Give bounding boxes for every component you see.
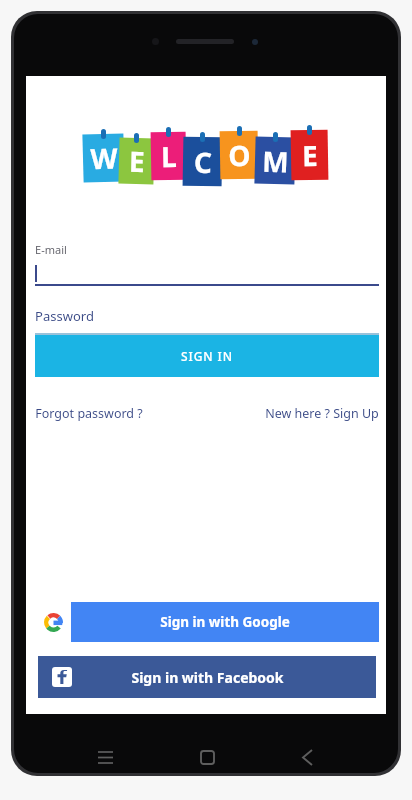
button[interactable]: Forgot password ?: [33, 403, 145, 424]
staticText: E: [128, 142, 145, 180]
button[interactable]: New here ? Sign Up: [263, 403, 381, 424]
staticText: O: [228, 136, 251, 174]
staticText: Sign in with Google: [160, 613, 290, 631]
button[interactable]: Menu: [92, 744, 118, 770]
button[interactable]: Home: [194, 744, 220, 770]
staticText: M: [261, 142, 289, 180]
staticText: Sign in with Facebook: [131, 668, 284, 687]
button[interactable]: SIGN IN: [35, 335, 379, 377]
staticText: Password: [35, 307, 94, 325]
button[interactable]: E-mail: [35, 242, 379, 286]
staticText: C: [194, 143, 212, 181]
button[interactable]: Sign in with Facebook: [38, 656, 376, 698]
staticText: E-mail: [35, 242, 67, 257]
staticText: SIGN IN: [181, 348, 233, 364]
staticText: L: [161, 137, 177, 175]
button[interactable]: Sign in with Google: [35, 602, 379, 642]
staticText: New here ? Sign Up: [265, 405, 379, 422]
button[interactable]: Back: [294, 744, 320, 770]
staticText: Forgot password ?: [35, 405, 143, 422]
button[interactable]: Password: [35, 307, 379, 335]
staticText: W: [89, 139, 118, 177]
staticText: E: [302, 136, 318, 174]
